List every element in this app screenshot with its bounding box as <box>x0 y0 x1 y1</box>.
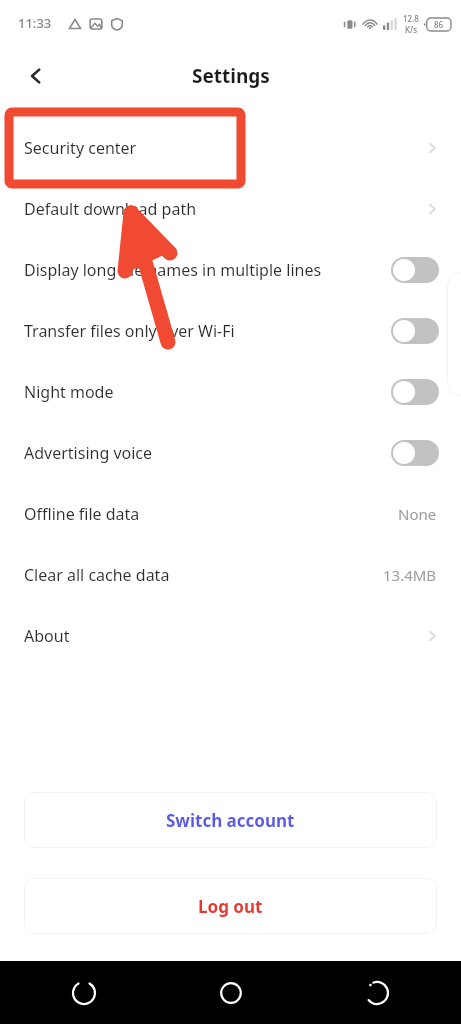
button[interactable]: Back <box>12 52 60 100</box>
button[interactable]: Home <box>207 969 255 1017</box>
staticText: 11:33 <box>18 14 52 32</box>
staticText: Offline file data <box>24 503 398 525</box>
button[interactable]: Transfer files only over Wi-Fi <box>0 300 461 361</box>
button[interactable]: About <box>0 605 461 666</box>
button[interactable]: Default download path <box>0 178 461 239</box>
button[interactable]: Advertising voice toggle <box>391 440 439 466</box>
button[interactable]: Night mode <box>0 361 461 422</box>
staticText: 13.4MB <box>383 565 437 585</box>
staticText: Display long file names in multiple line… <box>24 259 391 281</box>
staticText: Log out <box>198 895 263 918</box>
button[interactable]: Log out <box>24 878 437 934</box>
staticText: Settings <box>192 63 270 89</box>
button[interactable]: Display long file names in multiple line… <box>391 257 439 283</box>
staticText: Clear all cache data <box>24 564 383 586</box>
staticText: 12.8 <box>403 13 419 24</box>
staticText: K/s <box>405 24 418 35</box>
button[interactable]: Recent apps <box>60 969 108 1017</box>
staticText: Default download path <box>24 198 425 220</box>
button[interactable]: Back <box>353 969 401 1017</box>
button[interactable]: Advertising voice <box>0 422 461 483</box>
staticText: Advertising voice <box>24 442 391 464</box>
button[interactable]: Security center <box>0 117 461 178</box>
staticText: 86 <box>434 19 444 30</box>
button[interactable]: Clear all cache data <box>0 544 461 605</box>
button[interactable]: Night mode toggle <box>391 379 439 405</box>
button[interactable]: Display long file names in multiple line… <box>0 239 461 300</box>
staticText: Switch account <box>166 809 295 832</box>
staticText: Security center <box>24 137 425 159</box>
staticText: Transfer files only over Wi-Fi <box>24 320 391 342</box>
button[interactable]: Offline file data <box>0 483 461 544</box>
staticText: Night mode <box>24 381 391 403</box>
button[interactable]: Switch account <box>24 792 437 848</box>
button[interactable]: Transfer files only over Wi-Fi toggle <box>391 318 439 344</box>
staticText: None <box>398 504 437 524</box>
staticText: About <box>24 625 425 647</box>
